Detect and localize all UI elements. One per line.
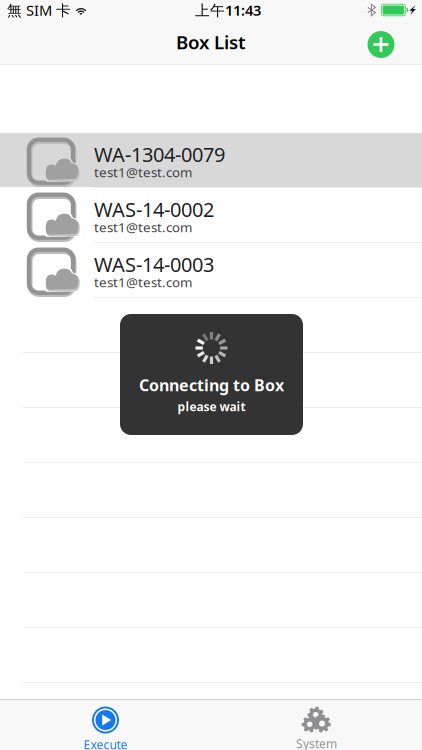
button[interactable]: WA-1304-0079: [0, 133, 422, 188]
staticText: WA-1304-0079: [94, 141, 225, 168]
staticText: test1@test.com: [94, 273, 192, 291]
button[interactable]: WAS-14-0002: [0, 188, 422, 243]
staticText: Execute: [83, 736, 127, 750]
staticText: 上午11:43: [195, 0, 261, 20]
button[interactable]: Add box: [354, 20, 422, 64]
button[interactable]: Execute: [0, 700, 211, 750]
staticText: WAS-14-0002: [94, 196, 214, 223]
staticText: System: [296, 735, 337, 750]
staticText: Connecting to Box: [139, 374, 284, 396]
staticText: test1@test.com: [94, 218, 192, 236]
staticText: please wait: [177, 399, 245, 415]
staticText: Box List: [176, 30, 246, 54]
staticText: test1@test.com: [94, 163, 192, 181]
staticText: WAS-14-0003: [94, 251, 214, 278]
staticText: 無 SIM 卡: [7, 0, 71, 20]
button[interactable]: WAS-14-0003: [0, 243, 422, 298]
button[interactable]: System: [211, 700, 422, 750]
